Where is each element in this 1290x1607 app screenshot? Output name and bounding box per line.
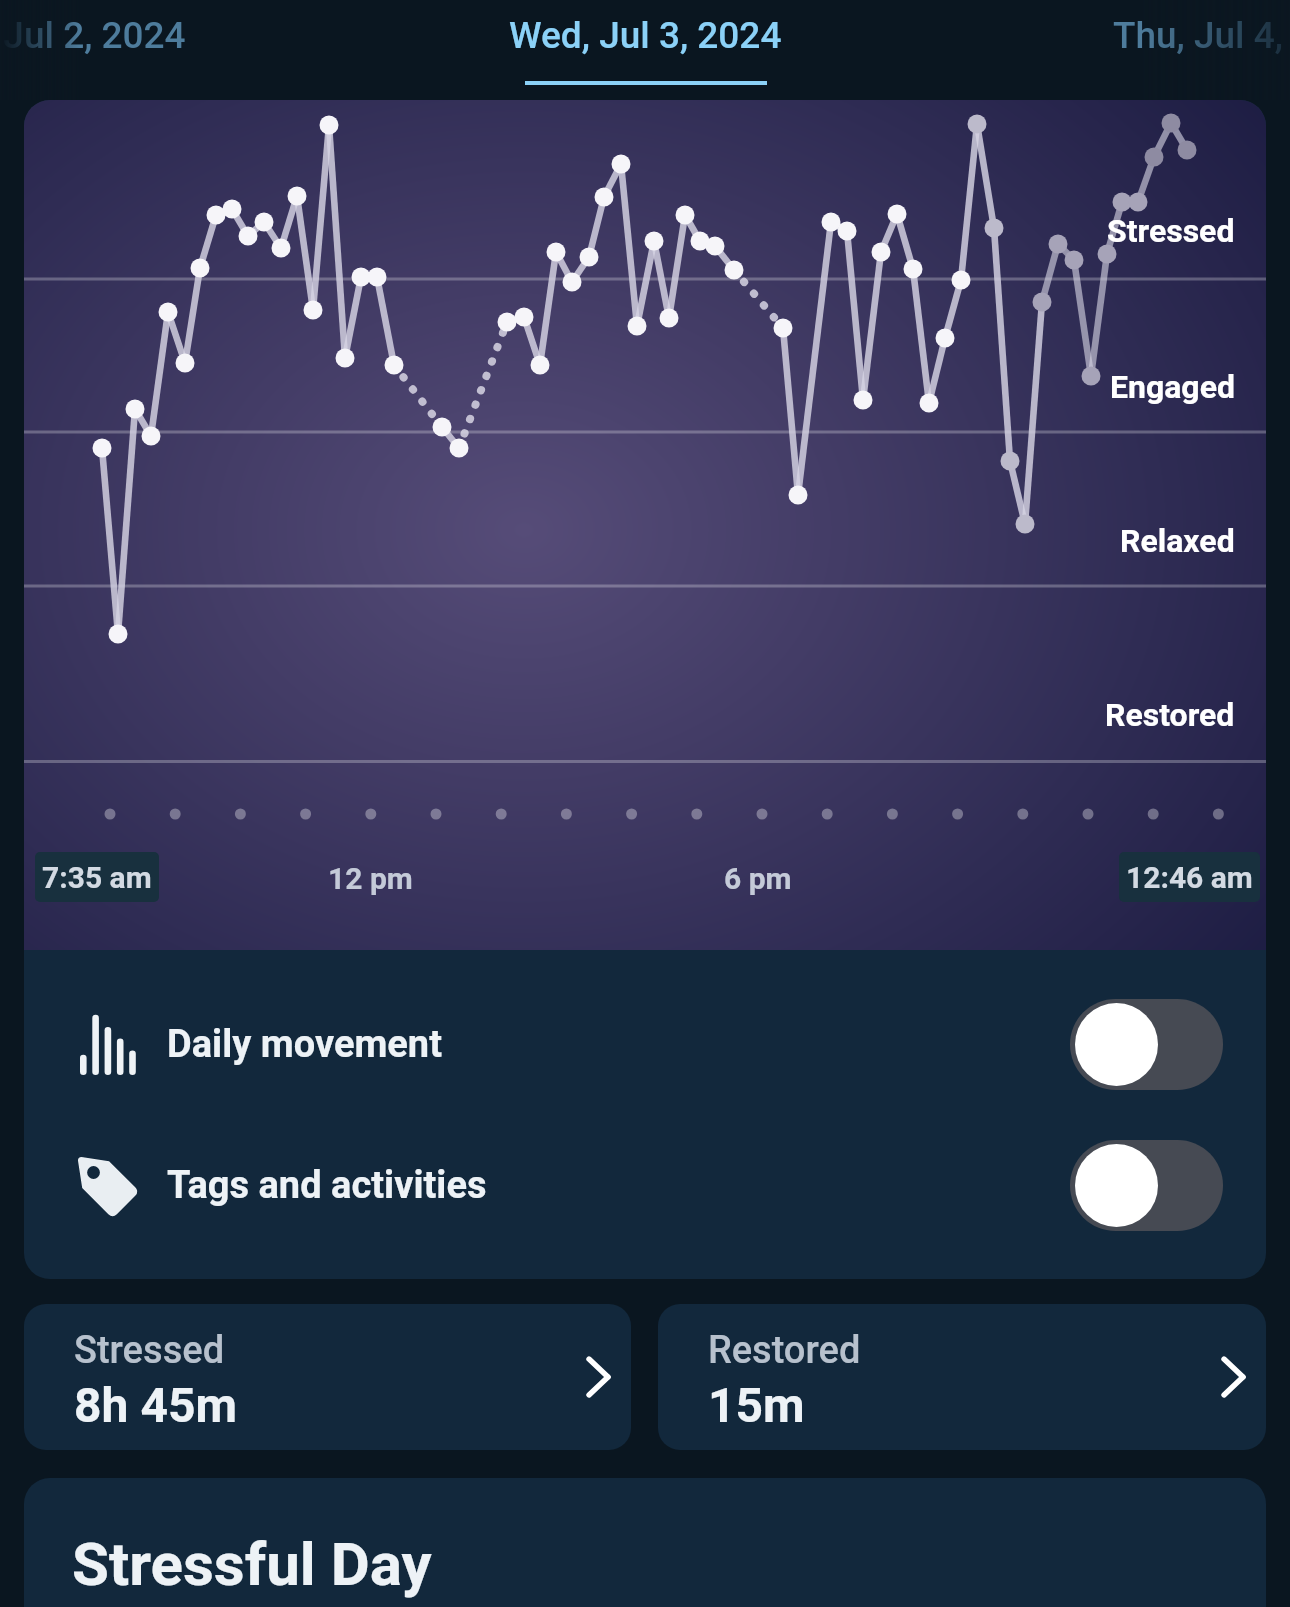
button[interactable]: Daily movement — [24, 974, 1266, 1115]
staticText: 7:35 am — [42, 860, 152, 895]
staticText: Wed, Jul 3, 2024 — [509, 14, 782, 57]
button[interactable]: Stressful Day — [24, 1478, 1266, 1607]
staticText: Restored — [1105, 696, 1235, 734]
staticText: Relaxed — [1120, 522, 1235, 560]
button[interactable]: , Jul 2, 2024 — [0, 0, 186, 70]
button[interactable]: Thu, Jul 4, 2 — [1113, 0, 1290, 70]
staticText: , Jul 2, 2024 — [0, 14, 186, 57]
button[interactable]: Tags and activities — [24, 1115, 1266, 1256]
staticText: 8h 45m — [74, 1377, 238, 1433]
staticText: Restored — [708, 1328, 861, 1373]
button[interactable]: Restored — [658, 1304, 1266, 1450]
button[interactable]: Wed, Jul 3, 2024 — [509, 0, 782, 85]
staticText: Daily movement — [167, 1022, 442, 1067]
staticText: Stressed — [74, 1328, 225, 1373]
staticText: Stressful Day — [72, 1529, 432, 1599]
staticText: Engaged — [1110, 368, 1235, 406]
staticText: Tags and activities — [167, 1163, 487, 1208]
staticText: 15m — [708, 1377, 805, 1433]
staticText: 6 pm — [724, 861, 792, 896]
other: Open details — [576, 1354, 622, 1400]
button[interactable]: Toggle setting — [1070, 1140, 1223, 1231]
staticText: Thu, Jul 4, 2 — [1113, 14, 1290, 57]
button[interactable]: Stressed — [24, 1304, 631, 1450]
staticText: 12 pm — [328, 861, 413, 896]
staticText: 12:46 am — [1126, 860, 1253, 895]
other: Open details — [1211, 1354, 1257, 1400]
button[interactable]: Toggle setting — [1070, 999, 1223, 1090]
staticText: Stressed — [1107, 212, 1235, 250]
